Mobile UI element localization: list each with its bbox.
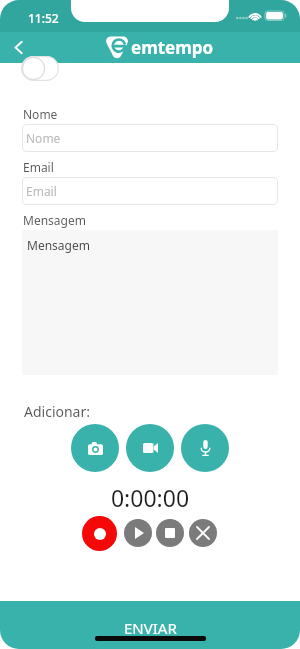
button[interactable]: Mensagem — [22, 230, 278, 375]
button[interactable]: Play — [124, 519, 152, 547]
staticText: emtempo — [131, 36, 214, 59]
button[interactable]: Back — [2, 32, 34, 63]
button[interactable]: Cancel — [189, 519, 217, 547]
staticText: Email — [23, 159, 54, 175]
staticText: Nome — [26, 130, 61, 146]
staticText: 0:00:00 — [0, 482, 300, 513]
staticText: Email — [26, 183, 57, 199]
staticText: ENVIAR — [124, 618, 177, 638]
button[interactable]: Stop — [156, 519, 184, 547]
staticText: Mensagem — [27, 237, 90, 253]
button[interactable]: Camera — [71, 424, 119, 472]
button[interactable]: Video — [126, 424, 174, 472]
staticText: Mensagem — [23, 212, 86, 228]
button[interactable]: Nome — [22, 124, 278, 152]
staticText: Nome — [23, 106, 58, 122]
button[interactable]: ENVIAR — [0, 601, 300, 649]
button[interactable]: Microphone — [181, 424, 229, 472]
staticText: 11:52 — [28, 10, 59, 26]
button[interactable]: Email — [22, 177, 278, 205]
staticText: Adicionar: — [24, 402, 91, 421]
button[interactable]: Record — [82, 516, 117, 551]
